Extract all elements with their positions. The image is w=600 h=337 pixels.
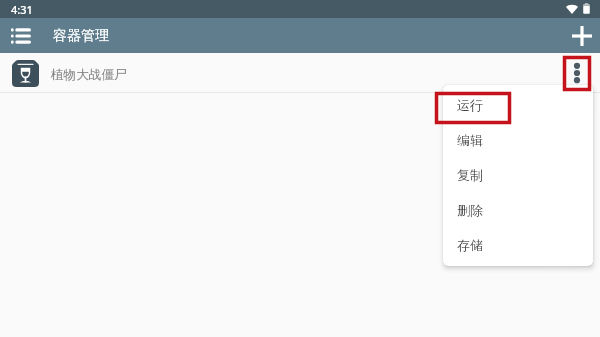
button[interactable]: Add container — [565, 19, 599, 53]
button[interactable]: 存储 — [443, 227, 593, 262]
button[interactable]: 编辑 — [443, 122, 593, 157]
button[interactable]: Navigation menu — [5, 20, 37, 52]
staticText: 复制 — [457, 167, 483, 183]
button[interactable]: 复制 — [443, 157, 593, 192]
staticText: 植物大战僵尸 — [51, 67, 127, 83]
staticText: 删除 — [457, 202, 483, 218]
button[interactable]: 删除 — [443, 192, 593, 227]
staticText: 运行 — [457, 97, 483, 113]
button[interactable]: 植物大战僵尸 — [0, 53, 600, 92]
staticText: 编辑 — [457, 132, 483, 148]
button[interactable]: 运行 — [443, 87, 593, 122]
button[interactable]: More options — [566, 56, 586, 90]
staticText: 存储 — [457, 237, 483, 253]
staticText: 4:31 — [11, 2, 33, 17]
staticText: 容器管理 — [53, 27, 109, 45]
